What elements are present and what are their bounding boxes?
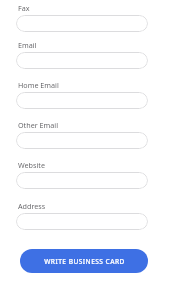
staticText: Address	[18, 201, 46, 211]
button[interactable]	[16, 213, 148, 230]
staticText: Home Email	[18, 80, 59, 90]
button[interactable]	[16, 52, 148, 69]
staticText: WRITE BUSINESS CARD	[44, 257, 125, 266]
staticText: Website	[18, 160, 45, 170]
staticText: Fax	[18, 3, 30, 13]
button[interactable]	[16, 92, 148, 109]
button[interactable]	[16, 172, 148, 189]
button[interactable]	[16, 132, 148, 149]
button[interactable]: WRITE BUSINESS CARD	[20, 249, 148, 273]
button[interactable]	[16, 15, 148, 32]
staticText: Email	[18, 40, 37, 50]
staticText: Other Email	[18, 120, 58, 130]
